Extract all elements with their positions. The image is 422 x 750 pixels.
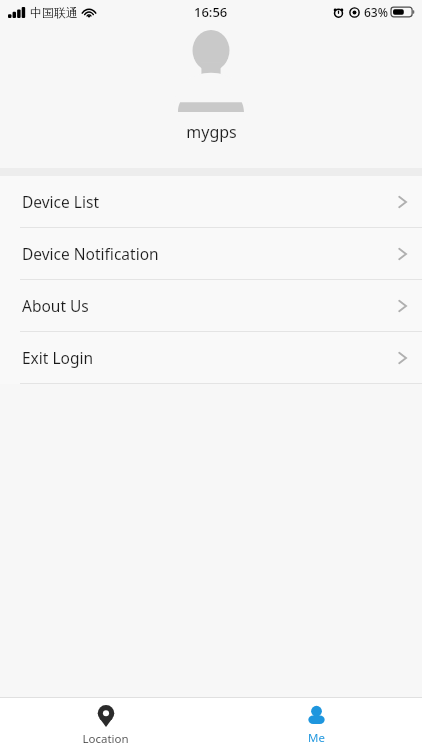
staticText: 16:56 xyxy=(194,3,228,21)
staticText: Exit Login xyxy=(22,347,94,368)
staticText: About Us xyxy=(22,295,89,316)
staticText: 中国联通 xyxy=(30,5,78,20)
staticText: Device List xyxy=(22,191,99,212)
staticText: Me xyxy=(308,730,325,746)
staticText: 63% xyxy=(364,4,388,20)
button[interactable]: Me xyxy=(211,698,422,750)
button[interactable]: Location xyxy=(0,698,211,750)
other: Location xyxy=(97,705,115,727)
button[interactable]: Device List xyxy=(0,176,422,227)
button[interactable]: Device Notification xyxy=(0,228,422,279)
staticText: Location xyxy=(82,731,129,747)
other: Me xyxy=(307,705,326,726)
staticText: Device Notification xyxy=(22,243,159,264)
button[interactable]: About Us xyxy=(0,280,422,331)
button[interactable]: Exit Login xyxy=(0,332,422,383)
staticText: mygps xyxy=(186,121,237,143)
